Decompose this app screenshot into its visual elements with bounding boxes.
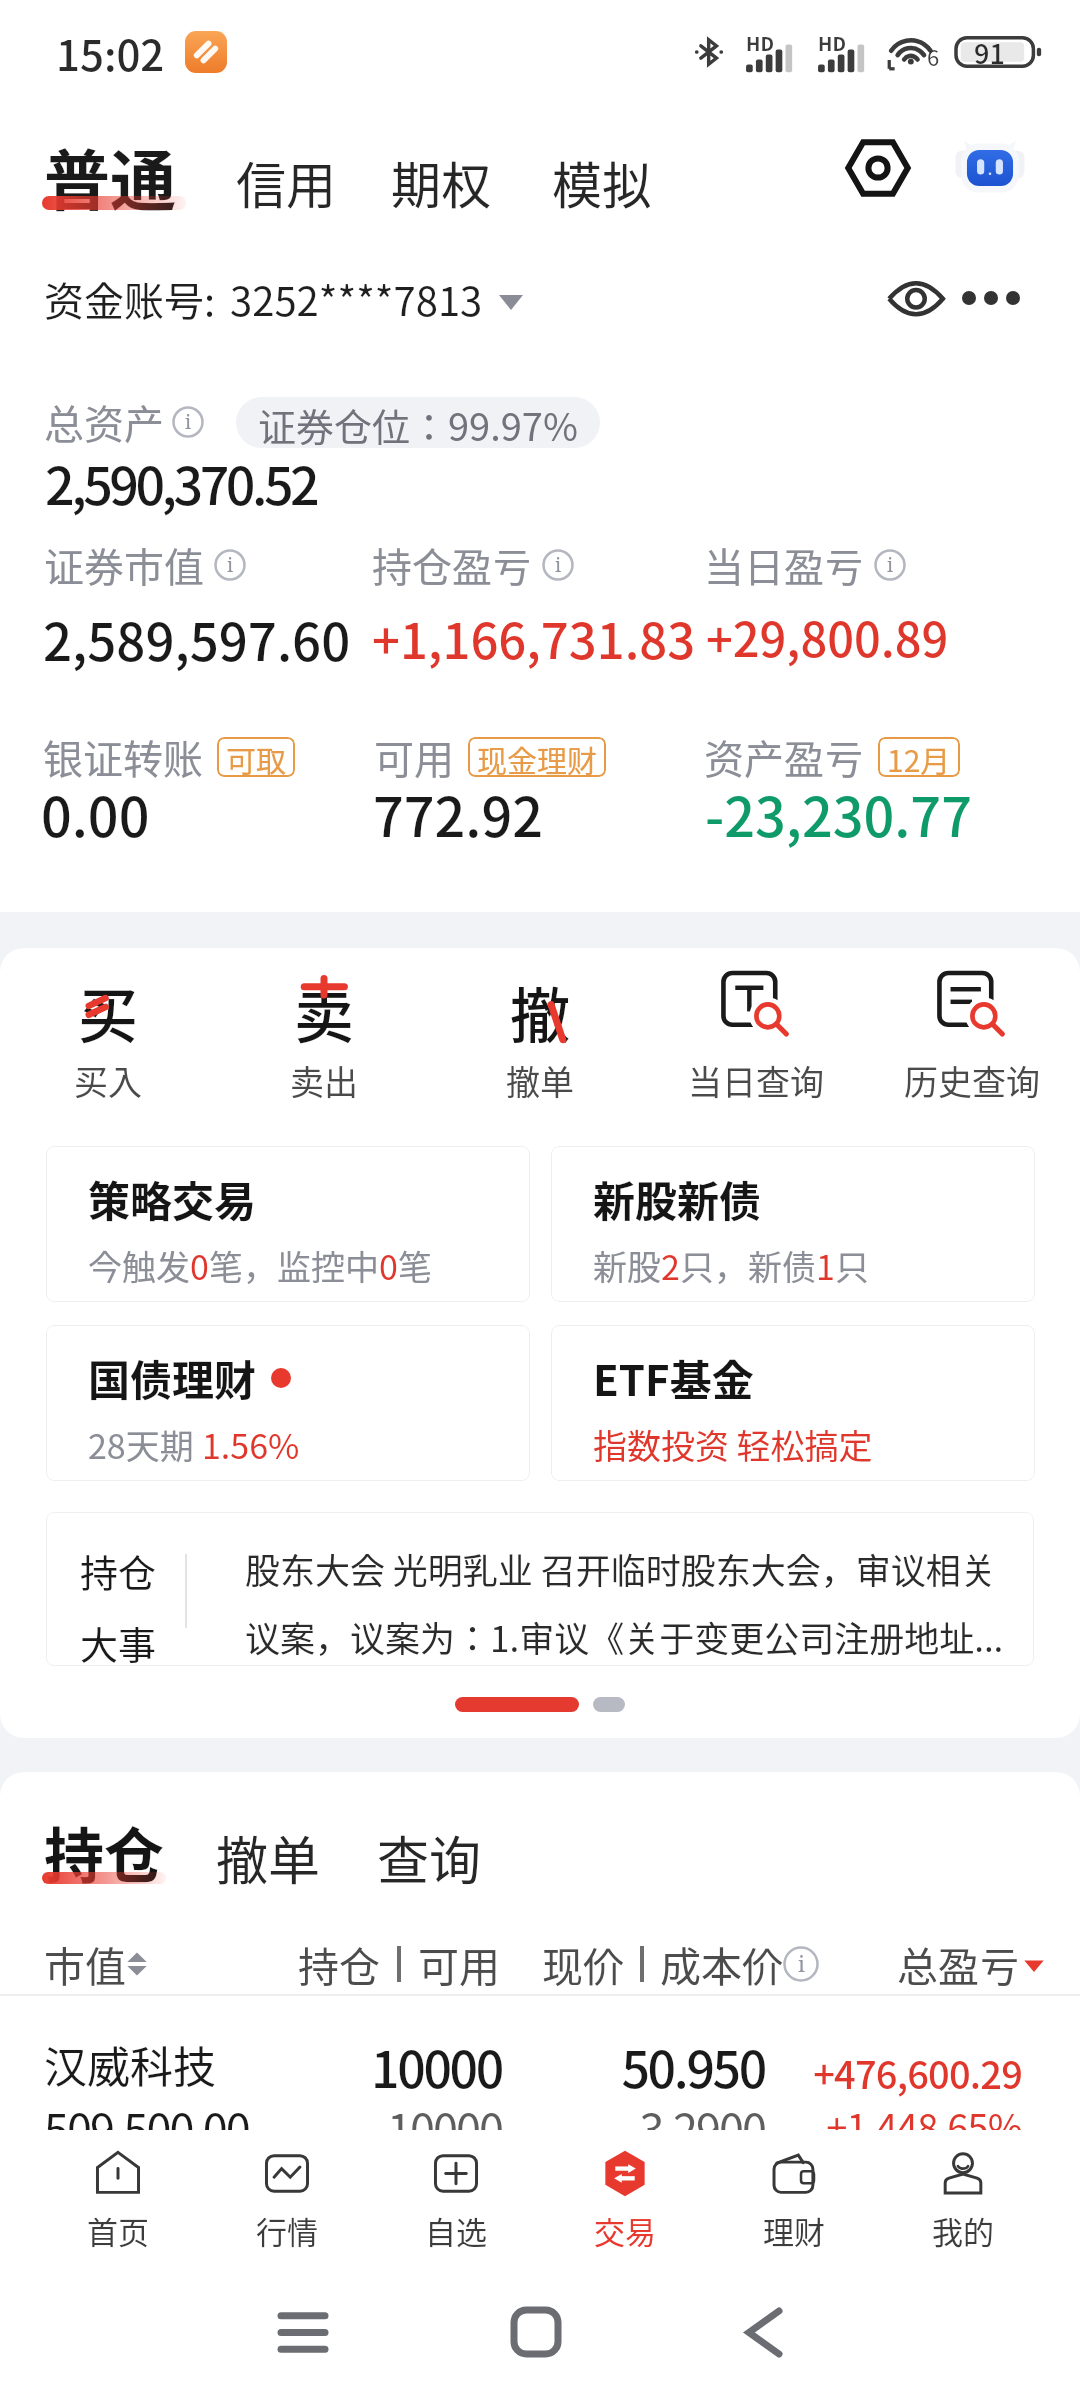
staticText: i [185, 408, 192, 434]
staticText: 可取 [226, 737, 286, 777]
staticText: i [555, 551, 562, 577]
button[interactable]: 模拟 [552, 146, 652, 218]
staticText: 信用 [236, 146, 336, 218]
staticText: 只 [835, 1241, 869, 1290]
staticText: 持仓 [298, 1934, 380, 1993]
staticText: 查询 [377, 1820, 482, 1895]
button[interactable]: More options [955, 262, 1027, 334]
button[interactable]: 理财 [710, 2145, 878, 2260]
staticText: 772.92 [373, 774, 543, 852]
staticText: 指数投资 轻松搞定 [593, 1420, 873, 1469]
staticText: 买 [78, 968, 138, 1046]
staticText: i [887, 551, 894, 577]
button[interactable]: 国债理财 [46, 1325, 530, 1481]
staticText: 首页 [87, 2208, 149, 2253]
button[interactable]: 撤单 [216, 1820, 321, 1895]
staticText: 新股 [593, 1241, 661, 1290]
staticText: 模拟 [552, 146, 652, 218]
button[interactable]: 持仓 [46, 1512, 1034, 1666]
staticText: 普通 [44, 128, 176, 224]
button[interactable]: 自选 [372, 2145, 540, 2260]
button[interactable]: Home [476, 2288, 596, 2376]
staticText: 1.56% [202, 1420, 300, 1469]
button[interactable]: 期权 [391, 146, 491, 218]
staticText: +1,448.65% [790, 2098, 1022, 2153]
staticText: HD [746, 29, 774, 57]
staticText: 6 [927, 40, 940, 72]
button[interactable]: 新股新债 [551, 1146, 1035, 1302]
staticText: 撤 [510, 968, 570, 1046]
staticText: 持仓 [80, 1543, 157, 1598]
staticText: i [798, 1949, 805, 1978]
button[interactable]: 普通 [44, 128, 176, 224]
button[interactable]: Recents [243, 2288, 363, 2376]
button[interactable]: 首页 [34, 2145, 202, 2260]
staticText: 持仓 [44, 1808, 164, 1895]
staticText: 卖 [294, 968, 354, 1046]
staticText: 撤单 [216, 1820, 321, 1895]
staticText: 总资产 [44, 393, 164, 451]
button[interactable]: 交易 [541, 2145, 709, 2260]
staticText: 28天期 [88, 1420, 202, 1469]
staticText: 只，新债 [680, 1241, 816, 1290]
staticText: 总盈亏 [897, 1934, 1020, 1993]
staticText: 1 [816, 1241, 835, 1290]
staticText: +476,600.29 [790, 2045, 1022, 2100]
staticText: 0.00 [41, 774, 150, 852]
staticText: HD [818, 29, 846, 57]
staticText: 资金账号: [44, 270, 216, 328]
button[interactable]: AI assistant [952, 130, 1028, 206]
button[interactable]: 资金账号: [44, 270, 523, 328]
button[interactable]: ETF基金 [551, 1325, 1035, 1481]
staticText: 期权 [391, 146, 491, 218]
staticText: 现金理财 [477, 737, 597, 777]
staticText: 12月 [887, 737, 951, 777]
staticText: 国债理财 [88, 1347, 257, 1408]
button[interactable]: 卖 [234, 968, 414, 1105]
button[interactable]: Back [704, 2288, 824, 2376]
staticText: 汉威科技 [44, 2033, 216, 2095]
staticText: 0 [379, 1241, 398, 1290]
staticText: 509,500.00 [44, 2095, 249, 2160]
staticText: 3252****7813 [230, 270, 483, 328]
staticText: 历史查询 [904, 1056, 1040, 1105]
button[interactable]: 撤 [450, 968, 630, 1105]
staticText: 股东大会 光明乳业 召开临时股东大会，审议相关 [245, 1543, 996, 1594]
staticText: 10000 [260, 2095, 502, 2160]
staticText: 我的 [932, 2208, 994, 2253]
staticText: 当日盈亏 [704, 536, 864, 594]
staticText: +1,166,731.83 [372, 602, 696, 673]
staticText: 91 [974, 33, 1005, 72]
button[interactable]: Toggle visibility [880, 262, 952, 334]
button[interactable]: Settings [840, 130, 916, 206]
staticText: 10000 [260, 2030, 502, 2102]
staticText: 交易 [594, 2208, 656, 2253]
staticText: 2 [661, 1241, 680, 1290]
staticText: 策略交易 [88, 1168, 257, 1229]
staticText: 理财 [763, 2208, 825, 2253]
staticText: 市值 [44, 1934, 126, 1993]
staticText: 2,590,370.52 [45, 445, 317, 520]
button[interactable]: 我的 [879, 2145, 1047, 2260]
staticText: 当日查询 [688, 1056, 824, 1105]
staticText: 证券仓位：99.97% [258, 397, 578, 448]
button[interactable]: 历史查询 [882, 968, 1062, 1105]
button[interactable]: 持仓 [44, 1808, 164, 1895]
button[interactable]: 查询 [377, 1820, 482, 1895]
staticText: ETF基金 [593, 1347, 754, 1408]
staticText: 3.2900 [530, 2095, 765, 2160]
button[interactable]: 证券仓位：99.97% [236, 397, 600, 448]
button[interactable]: 信用 [236, 146, 336, 218]
button[interactable]: 策略交易 [46, 1146, 530, 1302]
staticText: 今触发 [88, 1241, 190, 1290]
staticText: 撤单 [506, 1056, 574, 1105]
button[interactable]: 当日查询 [666, 968, 846, 1105]
staticText: 成本价 [660, 1934, 783, 1993]
staticText: 2,589,597.60 [43, 602, 351, 676]
button[interactable]: 行情 [203, 2145, 371, 2260]
staticText: 持仓盈亏 [372, 536, 532, 594]
staticText: 现价 [542, 1934, 624, 1993]
staticText: 50.950 [530, 2030, 765, 2102]
staticText: 自选 [425, 2208, 487, 2253]
button[interactable]: 买 [18, 968, 198, 1105]
